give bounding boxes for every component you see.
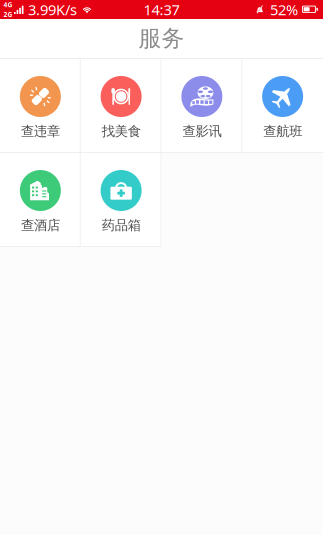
staticText: 14:37: [143, 0, 179, 19]
staticText: 2G: [3, 10, 12, 19]
button[interactable]: 查航班: [242, 59, 323, 152]
button[interactable]: 查酒店: [0, 153, 81, 246]
staticText: 4G: [3, 0, 12, 9]
staticText: 查影讯: [182, 123, 221, 139]
button[interactable]: 查违章: [0, 59, 81, 152]
button[interactable]: 找美食: [81, 59, 162, 152]
staticText: 52%: [270, 0, 298, 19]
staticText: 查违章: [21, 123, 60, 139]
staticText: 3.99K/s: [28, 0, 77, 19]
staticText: 查航班: [263, 123, 302, 139]
staticText: 服务: [138, 25, 184, 52]
button[interactable]: 药品箱: [81, 153, 162, 246]
button[interactable]: 查影讯: [161, 59, 242, 152]
staticText: 找美食: [102, 123, 141, 139]
staticText: 查酒店: [21, 217, 60, 233]
staticText: 药品箱: [102, 217, 141, 233]
